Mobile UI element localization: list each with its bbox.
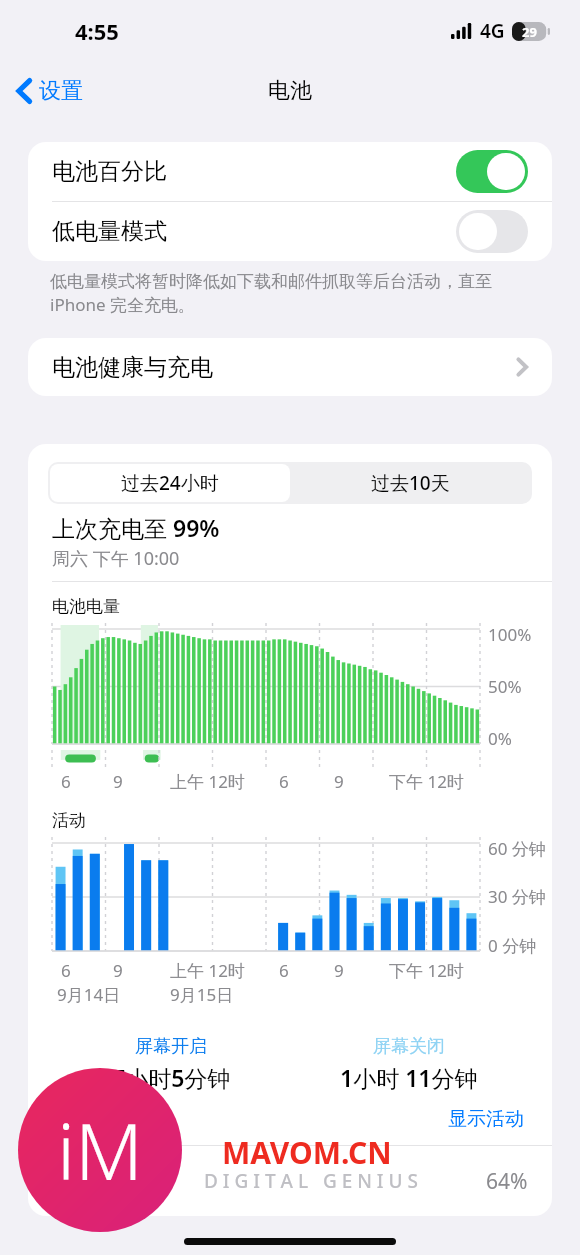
staticText: 显示活动 [448,1107,524,1131]
staticText: 上次充电至 99% [52,512,220,543]
staticText: 电池用量 [52,1107,128,1131]
staticText: 0 分钟 [488,934,537,957]
staticText: 6 [61,770,71,793]
staticText: 微信 [108,1168,150,1194]
staticText: 7小时5分钟 [112,1062,231,1093]
staticText: 30 分钟 [488,885,546,908]
staticText: 64% [486,1167,528,1196]
staticText: 4:55 [75,16,119,46]
staticText: 50% [488,675,522,698]
staticText: 电池百分比 [52,157,167,186]
staticText: 6 [61,959,71,982]
staticText: 6 [279,959,289,982]
staticText: 过去10天 [371,470,450,496]
staticText: 上午 12时 [170,959,245,982]
staticText: 9 [113,770,123,793]
staticText: 上午 12时 [170,770,245,793]
staticText: 过去24小时 [121,470,219,496]
staticText: 电池电量 [52,596,120,617]
staticText: 100% [488,623,532,646]
staticText: 设置 [39,77,83,105]
button[interactable]: 电池百分比 [28,142,552,201]
staticText: 9月15日 [170,983,234,1006]
staticText: 9 [334,959,344,982]
staticText: 4G [480,18,505,44]
button[interactable]: 电池健康与充电 [28,338,552,396]
staticText: 9 [334,770,344,793]
staticText: 屏幕开启 [135,1035,207,1058]
staticText: MAVOM.CN [222,1132,392,1173]
button[interactable]: 低电量模式 [28,202,552,261]
button[interactable]: 过去10天 [290,464,530,502]
button[interactable]: 设置 [0,67,95,115]
staticText: 1小时 11分钟 [340,1062,478,1093]
staticText: 活动 [52,810,86,831]
staticText: 6 [279,770,289,793]
staticText: 60 分钟 [488,837,546,860]
staticText: 周六 下午 10:00 [52,546,180,571]
button[interactable]: 微信 [28,1146,552,1216]
staticText: iM [57,1097,144,1203]
staticText: 9 [113,959,123,982]
button[interactable]: 显示活动 [444,1103,528,1135]
staticText: 9月14日 [57,983,121,1006]
staticText: 低电量模式将暂时降低如下载和邮件抓取等后台活动，直至 iPhone 完全充电。 [50,271,492,316]
staticText: 电池健康与充电 [52,353,213,382]
staticText: 低电量模式 [52,217,167,246]
staticText: D I G I T A L G E N I U S [204,1168,418,1194]
staticText: 电池 [268,77,312,105]
staticText: 29 [522,23,537,41]
button[interactable]: 过去24小时 [50,464,290,502]
staticText: 屏幕关闭 [373,1035,445,1058]
staticText: 下午 12时 [389,959,464,982]
staticText: 下午 12时 [389,770,464,793]
staticText: 0% [488,727,512,750]
